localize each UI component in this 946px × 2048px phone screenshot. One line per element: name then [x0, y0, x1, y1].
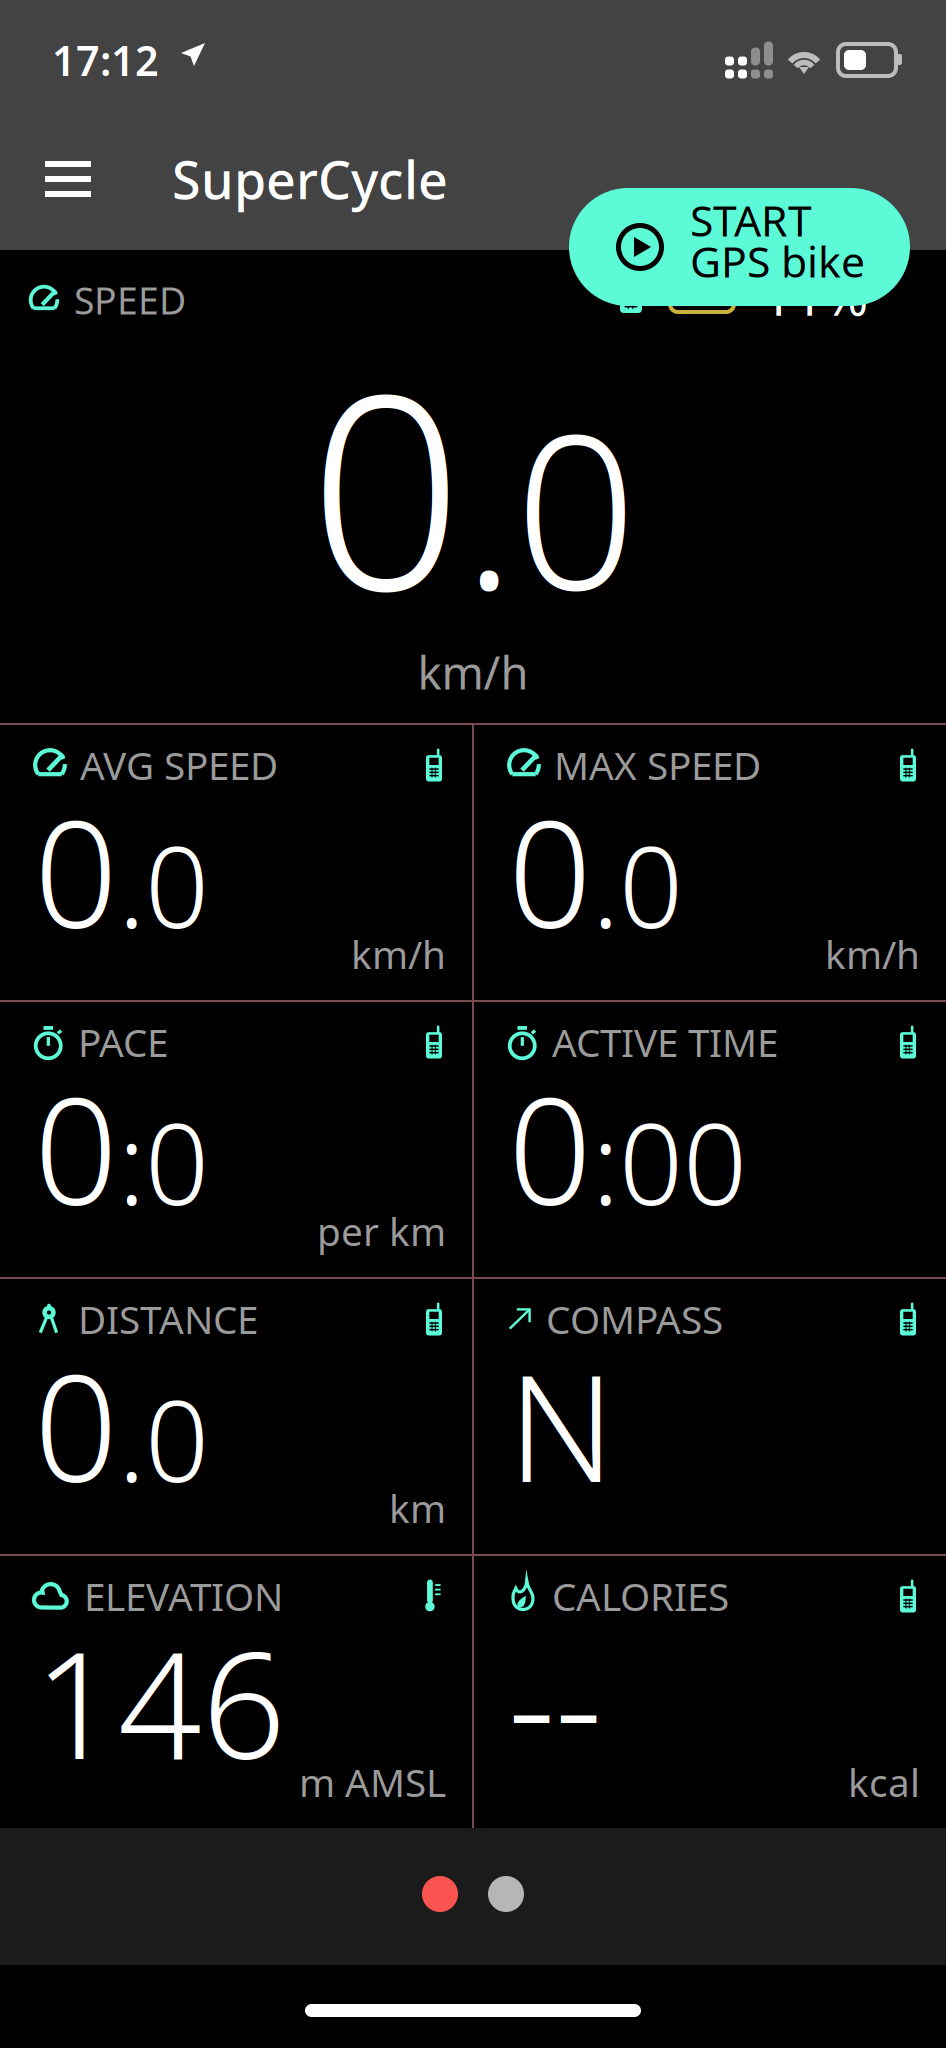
- staticText: CALORIES: [552, 1570, 729, 1622]
- staticText: 146: [34, 1605, 286, 1799]
- staticText: kcal: [848, 1756, 920, 1808]
- button[interactable]: START: [569, 188, 910, 306]
- staticText: DISTANCE: [78, 1293, 258, 1345]
- staticText: .0: [118, 810, 209, 959]
- staticText: 17:12: [52, 33, 159, 87]
- staticText: .0: [592, 810, 683, 959]
- staticText: per km: [317, 1205, 446, 1257]
- staticText: 11%: [762, 260, 868, 330]
- staticText: km/h: [351, 928, 446, 980]
- staticText: 0: [309, 306, 463, 664]
- staticText: m AMSL: [299, 1756, 446, 1808]
- staticText: 0: [508, 774, 592, 968]
- staticText: km: [389, 1482, 446, 1534]
- staticText: 0: [34, 774, 118, 968]
- staticText: PACE: [78, 1016, 168, 1068]
- staticText: :0: [118, 1087, 209, 1236]
- staticText: --: [508, 1605, 602, 1799]
- staticText: MAX SPEED: [554, 739, 761, 791]
- staticText: START: [690, 192, 812, 248]
- staticText: .0: [118, 1364, 209, 1513]
- staticText: 0: [34, 1328, 118, 1522]
- staticText: km/h: [417, 642, 528, 702]
- button[interactable]: Page 1: [422, 1876, 458, 1912]
- staticText: :00: [592, 1087, 747, 1236]
- staticText: SPEED: [74, 275, 186, 325]
- staticText: SuperCycle: [172, 144, 448, 214]
- staticText: ACTIVE TIME: [552, 1016, 778, 1068]
- button[interactable]: Menu: [22, 133, 114, 225]
- staticText: COMPASS: [546, 1293, 723, 1345]
- staticText: GPS bike: [690, 233, 865, 289]
- staticText: 0: [508, 1051, 592, 1245]
- button[interactable]: Page 2: [488, 1876, 524, 1912]
- staticText: .0: [463, 365, 637, 648]
- staticText: AVG SPEED: [80, 739, 278, 791]
- staticText: N: [508, 1328, 615, 1522]
- staticText: 0: [34, 1051, 118, 1245]
- staticText: km/h: [825, 928, 920, 980]
- staticText: ELEVATION: [84, 1570, 283, 1622]
